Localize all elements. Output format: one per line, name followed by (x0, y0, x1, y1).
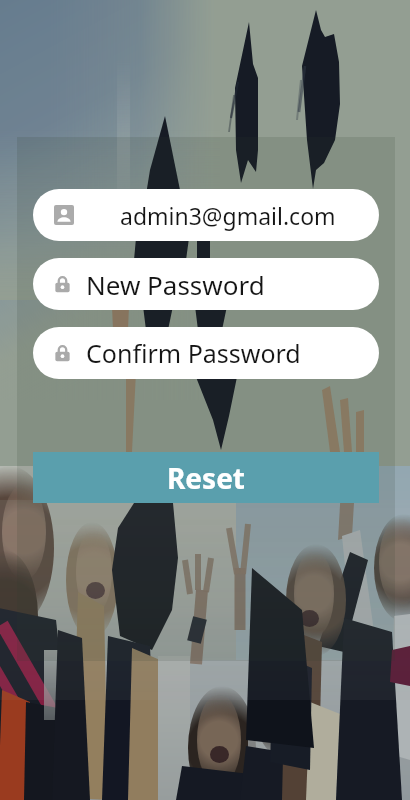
staticText: New Password (86, 267, 265, 302)
button[interactable]: New Password (33, 258, 379, 310)
button[interactable]: Reset (33, 452, 379, 503)
button[interactable]: Confirm Password (33, 327, 379, 379)
button[interactable]: admin3@gmail.com (33, 189, 379, 241)
staticText: Reset (167, 459, 246, 497)
staticText: admin3@gmail.com (120, 200, 336, 231)
staticText: Confirm Password (86, 336, 301, 370)
